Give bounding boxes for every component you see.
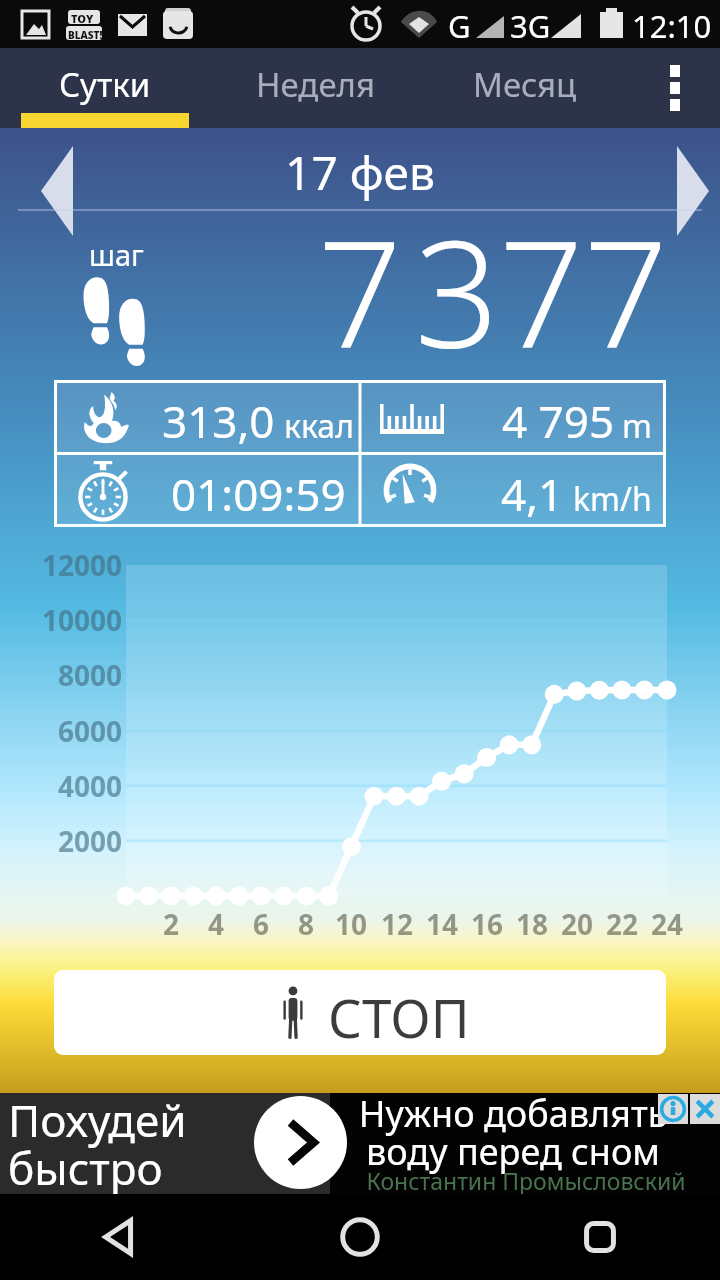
staticText: Неделя: [256, 62, 375, 107]
staticText: 2000: [22, 822, 122, 860]
staticText: 10000: [22, 601, 122, 639]
staticText: km/h: [573, 477, 652, 521]
button[interactable]: Open advertisement: [254, 1096, 347, 1189]
staticText: 17 фев: [0, 141, 720, 204]
staticText: 16: [457, 905, 517, 943]
staticText: 7: [307, 190, 402, 392]
staticText: 3G: [510, 5, 551, 47]
staticText: 377: [304, 190, 668, 392]
staticText: 12000: [22, 546, 122, 584]
staticText: ккал: [284, 404, 354, 448]
staticText: 01:09:59: [171, 464, 346, 524]
button[interactable]: Нужно добавлять: [348, 1093, 678, 1194]
button[interactable]: Home: [240, 1194, 480, 1280]
staticText: 313,0: [162, 391, 275, 451]
button[interactable]: Похудей: [0, 1093, 255, 1194]
staticText: Нужно добавлять: [348, 1089, 678, 1138]
staticText: Месяц: [473, 62, 577, 107]
staticText: 6000: [22, 712, 122, 750]
button[interactable]: Close advertisement: [690, 1094, 720, 1124]
button[interactable]: Recent apps: [480, 1194, 720, 1280]
button[interactable]: Сутки: [0, 48, 210, 128]
staticText: m: [622, 404, 652, 448]
staticText: 10: [321, 905, 381, 943]
button[interactable]: Previous day: [12, 134, 104, 202]
staticText: BLAST!: [68, 28, 103, 42]
staticText: 22: [592, 905, 652, 943]
button[interactable]: More options: [630, 48, 720, 128]
staticText: быстро: [8, 1138, 163, 1198]
staticText: 12: [367, 905, 427, 943]
staticText: 4,1: [501, 464, 564, 524]
button[interactable]: Next day: [616, 134, 708, 202]
staticText: 18: [502, 905, 562, 943]
staticText: 4 795: [502, 391, 615, 451]
button[interactable]: Месяц: [420, 48, 630, 128]
staticText: TOY: [71, 11, 94, 26]
staticText: 6: [231, 905, 291, 943]
staticText: СТОП: [328, 981, 470, 1053]
staticText: G: [448, 5, 471, 47]
staticText: 12:10: [632, 5, 712, 47]
staticText: Константин Промысловский: [326, 1165, 720, 1196]
staticText: воду перед сном: [348, 1127, 678, 1176]
staticText: 2: [141, 905, 201, 943]
staticText: 4: [186, 905, 246, 943]
staticText: 4000: [22, 767, 122, 805]
staticText: Сутки: [59, 62, 151, 107]
button[interactable]: СТОП: [54, 970, 666, 1055]
staticText: шаг: [89, 235, 144, 274]
button[interactable]: Неделя: [210, 48, 420, 128]
staticText: Похудей: [8, 1090, 187, 1150]
staticText: 20: [547, 905, 607, 943]
button[interactable]: Ad information: [658, 1094, 688, 1124]
staticText: 24: [637, 905, 697, 943]
staticText: 8: [276, 905, 336, 943]
staticText: 8000: [22, 656, 122, 694]
button[interactable]: Back: [0, 1194, 240, 1280]
staticText: 14: [412, 905, 472, 943]
